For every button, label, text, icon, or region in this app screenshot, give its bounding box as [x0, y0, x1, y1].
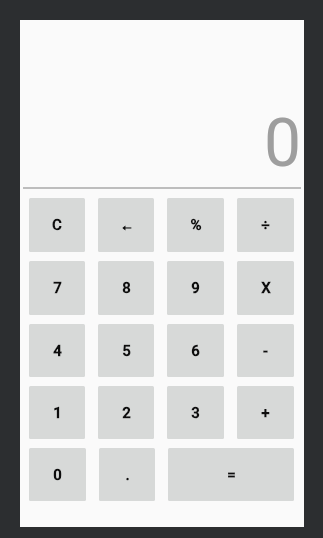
staticText: 2: [122, 404, 131, 422]
staticText: 8: [122, 279, 131, 297]
button[interactable]: Backspace: [98, 198, 154, 252]
button[interactable]: C: [29, 198, 85, 252]
button[interactable]: 3: [167, 386, 224, 439]
staticText: 9: [191, 279, 200, 297]
button[interactable]: ÷: [237, 198, 294, 252]
button[interactable]: 8: [98, 261, 154, 315]
button[interactable]: 0: [29, 448, 86, 501]
staticText: 1: [53, 404, 62, 422]
button[interactable]: 6: [167, 324, 224, 377]
button[interactable]: 9: [167, 261, 224, 315]
button[interactable]: 5: [98, 324, 154, 377]
button[interactable]: =: [168, 448, 294, 501]
button[interactable]: 7: [29, 261, 85, 315]
button[interactable]: 4: [29, 324, 85, 377]
staticText: ÷: [261, 216, 270, 234]
button[interactable]: 1: [29, 386, 85, 439]
staticText: +: [261, 404, 270, 422]
button[interactable]: +: [237, 386, 294, 439]
staticText: =: [227, 466, 236, 484]
button[interactable]: .: [99, 448, 155, 501]
button[interactable]: X: [237, 261, 294, 315]
staticText: -: [263, 342, 268, 360]
staticText: 5: [122, 342, 131, 360]
staticText: 0: [53, 466, 62, 484]
staticText: 6: [191, 342, 200, 360]
button[interactable]: 2: [98, 386, 154, 439]
staticText: 7: [53, 279, 62, 297]
staticText: 0: [263, 105, 301, 182]
staticText: C: [52, 216, 62, 234]
staticText: 3: [191, 404, 200, 422]
button[interactable]: %: [167, 198, 224, 252]
staticText: X: [261, 279, 271, 297]
staticText: .: [125, 466, 130, 484]
staticText: 4: [53, 342, 62, 360]
staticText: %: [190, 216, 202, 234]
button[interactable]: -: [237, 324, 294, 377]
